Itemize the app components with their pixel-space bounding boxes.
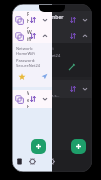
button[interactable]: Reorder bbox=[29, 95, 37, 103]
button[interactable]: Phone Number bbox=[12, 11, 92, 29]
button[interactable]: Collapse bbox=[41, 32, 49, 40]
button[interactable]: Website bbox=[12, 80, 92, 98]
button[interactable]: Add bbox=[31, 139, 46, 154]
button[interactable]: Reorder bbox=[69, 16, 77, 24]
button[interactable]: Favourite bbox=[16, 71, 27, 82]
staticText: Phone Number bbox=[27, 14, 64, 21]
staticText: Password: SecureNet24 bbox=[16, 58, 48, 68]
button[interactable]: Collapse bbox=[81, 32, 89, 40]
staticText: Website bbox=[27, 90, 29, 108]
button[interactable]: Reorder bbox=[29, 32, 37, 40]
staticText: Phone Number bbox=[27, 11, 29, 29]
button[interactable]: Reorder bbox=[29, 16, 37, 24]
staticText: Password: SecureNet24 bbox=[16, 53, 61, 58]
staticText: Network: HomeWiFi bbox=[16, 46, 54, 51]
button[interactable]: Send bbox=[41, 71, 48, 82]
staticText: +1 555-0147 bbox=[27, 21, 50, 26]
button[interactable]: Expand bbox=[41, 16, 49, 24]
button[interactable]: Clips bbox=[12, 150, 38, 172]
button[interactable]: Expand bbox=[81, 85, 89, 93]
button[interactable]: Wifi bbox=[12, 29, 52, 43]
staticText: Wifi bbox=[27, 29, 29, 43]
button[interactable]: Settings bbox=[38, 150, 65, 172]
button[interactable]: Settings bbox=[26, 150, 39, 172]
staticText: Wifi bbox=[27, 33, 37, 40]
button[interactable]: Website bbox=[12, 90, 52, 108]
button[interactable]: Reorder bbox=[69, 32, 77, 40]
button[interactable]: Favourite bbox=[16, 61, 27, 72]
button[interactable]: Clips bbox=[12, 150, 26, 172]
button[interactable]: Wifi bbox=[12, 29, 92, 43]
staticText: Network: HomeWiFi bbox=[16, 46, 48, 56]
button[interactable]: Expand bbox=[41, 95, 49, 103]
staticText: Website bbox=[27, 81, 47, 88]
staticText: https://www.example.c… bbox=[27, 88, 69, 98]
button[interactable]: Edit bbox=[66, 61, 77, 72]
button[interactable]: Add bbox=[71, 139, 86, 154]
button[interactable]: Expand bbox=[81, 16, 89, 24]
button[interactable]: Phone Number bbox=[12, 11, 52, 29]
button[interactable]: Reorder bbox=[69, 85, 77, 93]
